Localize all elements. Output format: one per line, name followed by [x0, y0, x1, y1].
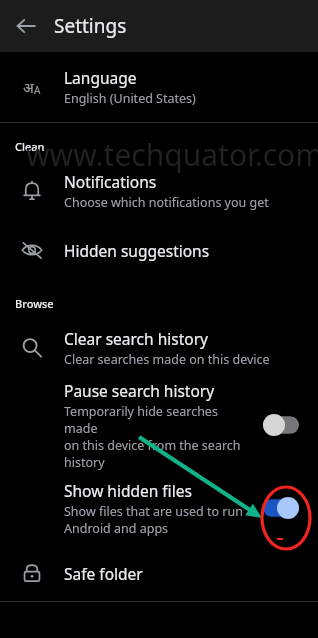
- staticText: English (United States): [64, 90, 196, 107]
- staticText: history: [64, 454, 105, 471]
- staticText: Hidden suggestions: [64, 240, 210, 261]
- staticText: Clear search history: [64, 328, 208, 349]
- staticText: अ: [23, 78, 34, 97]
- staticText: Browse: [15, 296, 54, 311]
- staticText: Notifications: [64, 171, 157, 192]
- staticText: Language: [64, 67, 137, 88]
- staticText: Clean: [15, 139, 45, 154]
- button[interactable]: Pause search history off: [260, 411, 302, 439]
- staticText: A: [34, 83, 41, 97]
- button[interactable]: Pause search history: [0, 379, 318, 471]
- staticText: Show files that are used to run: [64, 503, 243, 520]
- staticText: Show hidden files: [64, 480, 192, 501]
- staticText: Pause search history: [64, 380, 215, 401]
- button[interactable]: Back: [8, 8, 44, 44]
- button[interactable]: Hidden suggestions: [0, 222, 318, 278]
- staticText: Settings: [54, 13, 127, 39]
- staticText: Android and apps: [64, 520, 169, 537]
- button[interactable]: Show hidden files on: [260, 494, 302, 522]
- staticText: Choose which notifications you get: [64, 194, 269, 211]
- staticText: Temporarily hide searches made: [64, 403, 252, 437]
- button[interactable]: Safe folder: [0, 545, 318, 601]
- button[interactable]: Clear search history: [0, 317, 318, 379]
- staticText: on this device from the search: [64, 437, 241, 454]
- staticText: www.techquator.com: [26, 134, 318, 175]
- button[interactable]: अ: [0, 52, 318, 122]
- button[interactable]: Show hidden files: [0, 471, 318, 545]
- staticText: Clear searches made on this device: [64, 351, 270, 368]
- button[interactable]: Notifications: [0, 160, 318, 222]
- staticText: Safe folder: [64, 563, 143, 584]
